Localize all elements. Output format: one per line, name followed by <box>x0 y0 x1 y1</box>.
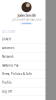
button[interactable]: Samsung Pay <box>0 61 53 70</box>
button[interactable]: Log Off <box>0 87 53 96</box>
staticText: Profile <box>2 81 12 84</box>
staticText: Terms, Policies & Info <box>2 72 32 76</box>
button[interactable]: Activities <box>0 44 53 52</box>
staticText: Linked <box>2 37 11 41</box>
staticText: PRO MEMBER <box>22 23 31 24</box>
staticText: johnsmith@email.com <box>12 18 41 21</box>
button[interactable]: Linked <box>0 35 53 44</box>
staticText: Log Off <box>2 90 12 93</box>
staticText: Samsung Pay <box>2 64 18 67</box>
button[interactable]: Network <box>0 52 53 61</box>
staticText: John Smith <box>17 13 35 18</box>
staticText: Activities <box>2 46 14 50</box>
staticText: ACCOUNT <box>2 30 15 34</box>
button[interactable]: Profile <box>0 79 53 87</box>
button[interactable]: Terms, Policies & Info <box>0 70 53 79</box>
staticText: Network <box>2 55 13 58</box>
